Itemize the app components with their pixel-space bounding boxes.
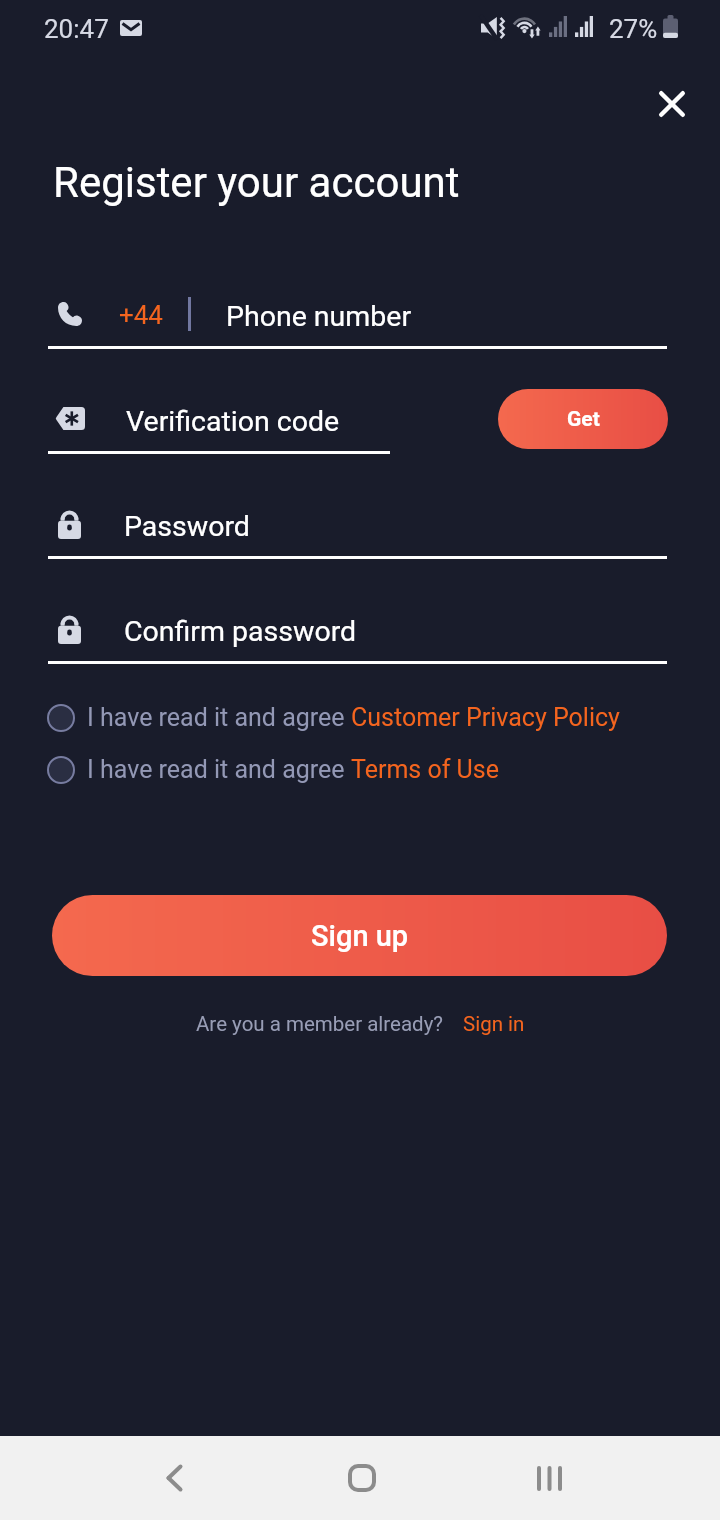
staticText: Register your account bbox=[53, 158, 460, 207]
staticText: 27% bbox=[609, 14, 658, 44]
staticText: 20:47 bbox=[44, 14, 109, 44]
staticText: Password bbox=[124, 510, 250, 543]
staticText: Get bbox=[567, 407, 600, 432]
button[interactable]: Sign in bbox=[463, 1012, 525, 1036]
staticText: Verification code bbox=[126, 405, 340, 438]
button[interactable]: Get bbox=[498, 389, 668, 449]
staticText: Customer Privacy Policy bbox=[351, 703, 620, 732]
button[interactable]: Recents bbox=[489, 1436, 609, 1520]
staticText: Sign up bbox=[311, 919, 409, 953]
button[interactable]: Home bbox=[302, 1436, 422, 1520]
button[interactable]: I have read it and agree bbox=[47, 755, 499, 784]
button[interactable]: Back bbox=[114, 1436, 234, 1520]
staticText: Phone number bbox=[226, 300, 412, 333]
staticText: I have read it and agree bbox=[87, 703, 351, 732]
staticText: +44 bbox=[119, 300, 163, 330]
staticText: Are you a member already? bbox=[196, 1012, 444, 1036]
staticText: I have read it and agree bbox=[87, 755, 351, 784]
button[interactable]: I have read it and agree bbox=[47, 703, 620, 732]
staticText: Terms of Use bbox=[351, 755, 499, 784]
staticText: Confirm password bbox=[124, 615, 357, 648]
button[interactable]: Sign up bbox=[52, 895, 667, 976]
button[interactable]: Close bbox=[647, 79, 696, 128]
